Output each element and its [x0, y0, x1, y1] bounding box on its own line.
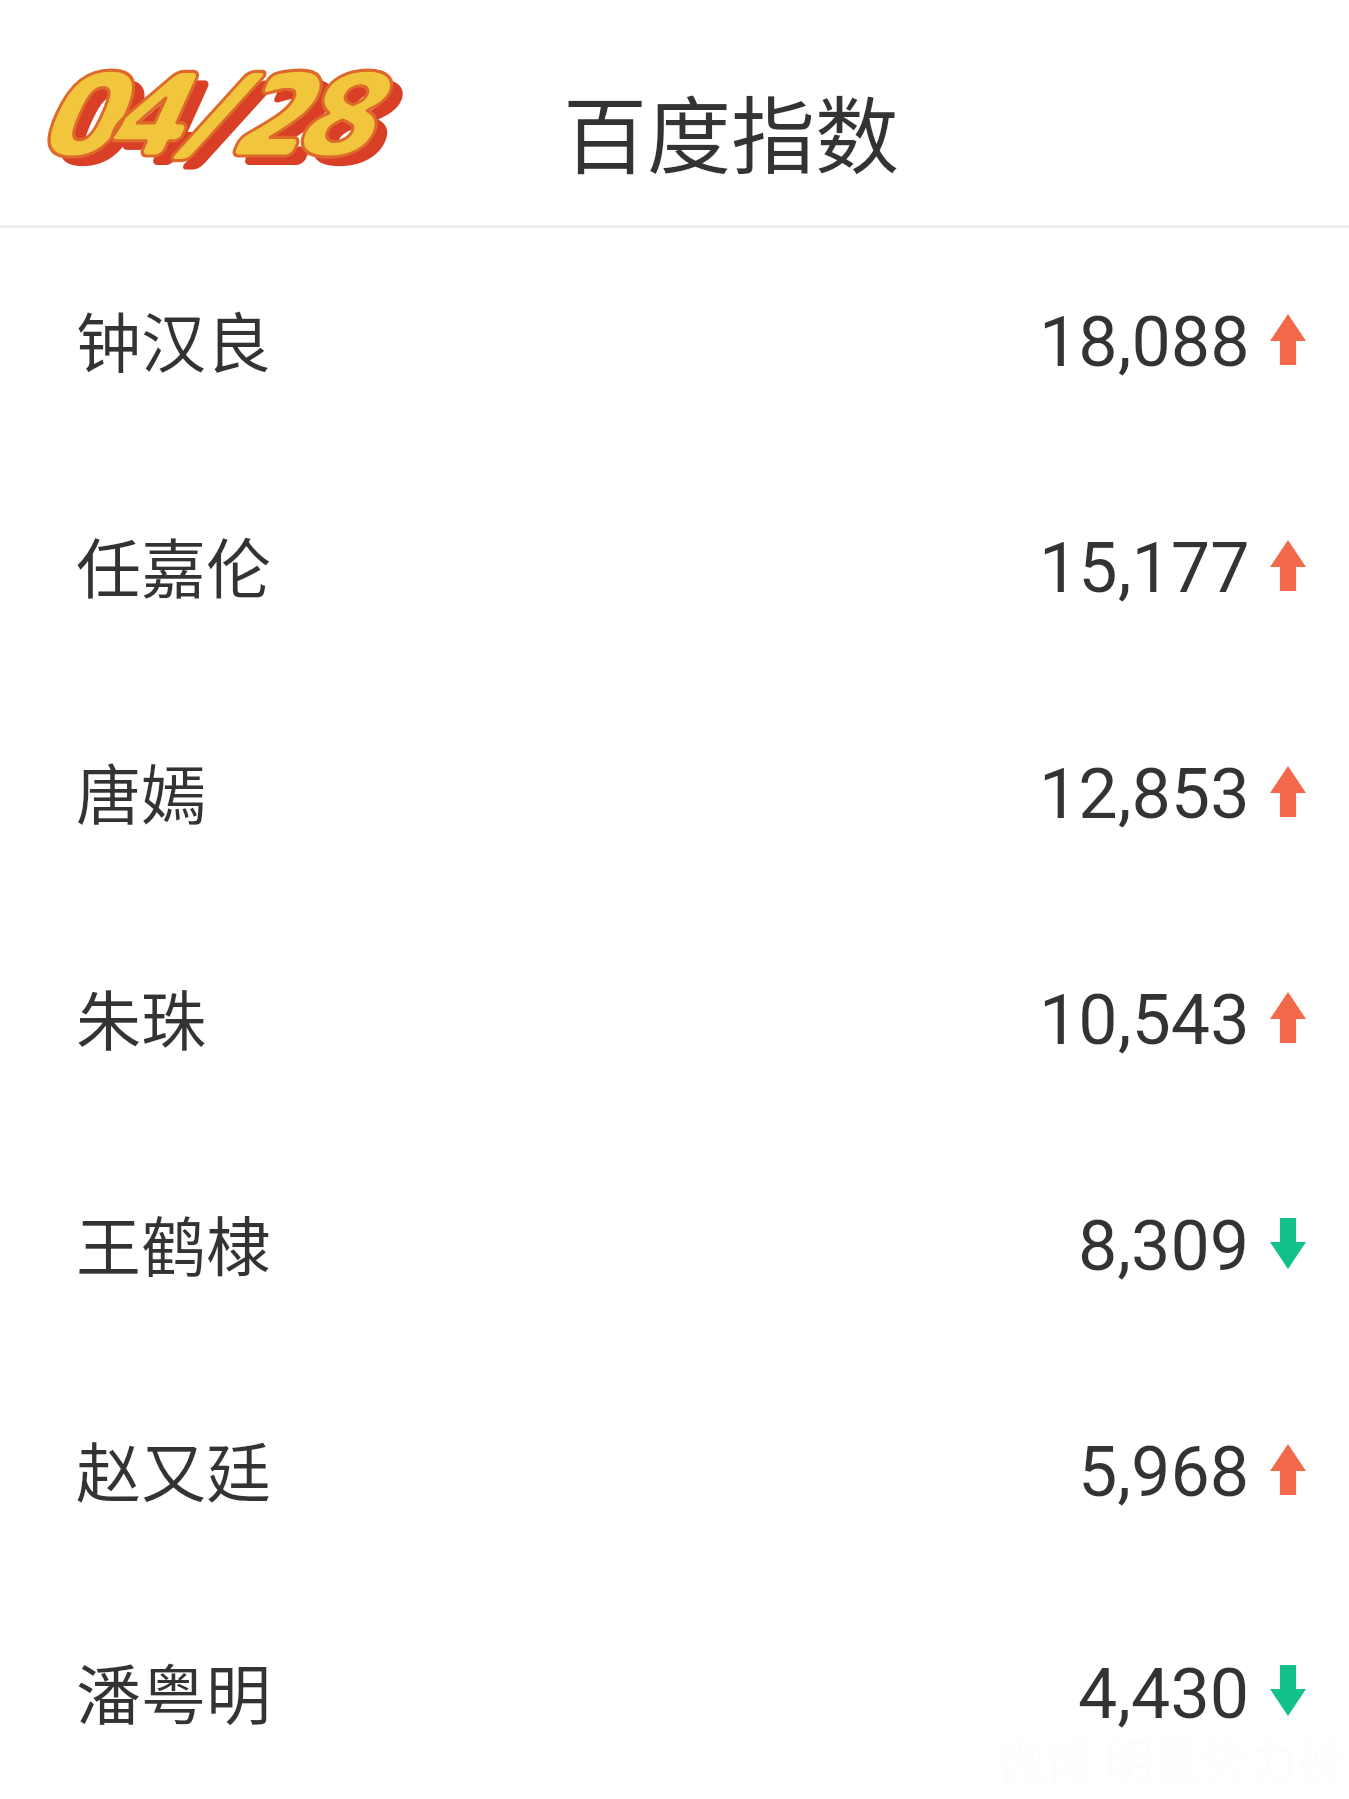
staticText: 8,309 [1078, 1205, 1250, 1287]
button[interactable]: 赵又廷 [0, 1356, 1349, 1582]
other: Down [1270, 1665, 1306, 1716]
staticText: 唐嫣 [76, 744, 207, 838]
button[interactable]: 朱珠 [0, 904, 1349, 1130]
staticText: 赵又廷 [76, 1422, 272, 1516]
button[interactable]: 唐嫣 [0, 678, 1349, 904]
button[interactable]: 钟汉良 [0, 226, 1349, 452]
staticText: 朱珠 [76, 970, 207, 1064]
other: Up [1270, 1444, 1306, 1495]
button[interactable]: 潘粤明 [0, 1582, 1349, 1799]
staticText: 04/28 [45, 40, 370, 202]
staticText: 18,088 [1039, 301, 1250, 383]
staticText: 钟汉良 [76, 292, 272, 386]
staticText: 4,430 [1078, 1653, 1250, 1735]
other: Up [1270, 314, 1306, 365]
staticText: 任嘉伦 [76, 518, 272, 612]
staticText: 微博 明星势力榜 [998, 1723, 1345, 1793]
staticText: 百度指数 [563, 70, 900, 192]
staticText: 王鹤棣 [76, 1196, 272, 1290]
other: Up [1270, 540, 1306, 591]
other: Up [1270, 992, 1306, 1043]
button[interactable]: 任嘉伦 [0, 452, 1349, 678]
staticText: 04/28 [34, 31, 359, 193]
other: Up [1270, 766, 1306, 817]
staticText: 10,543 [1039, 979, 1250, 1061]
other: Down [1270, 1218, 1306, 1269]
staticText: 12,853 [1039, 753, 1250, 835]
button[interactable]: 王鹤棣 [0, 1130, 1349, 1356]
staticText: 潘粤明 [76, 1644, 272, 1738]
staticText: 5,968 [1078, 1431, 1250, 1513]
staticText: 04/28 [34, 31, 359, 193]
staticText: 15,177 [1039, 527, 1250, 609]
